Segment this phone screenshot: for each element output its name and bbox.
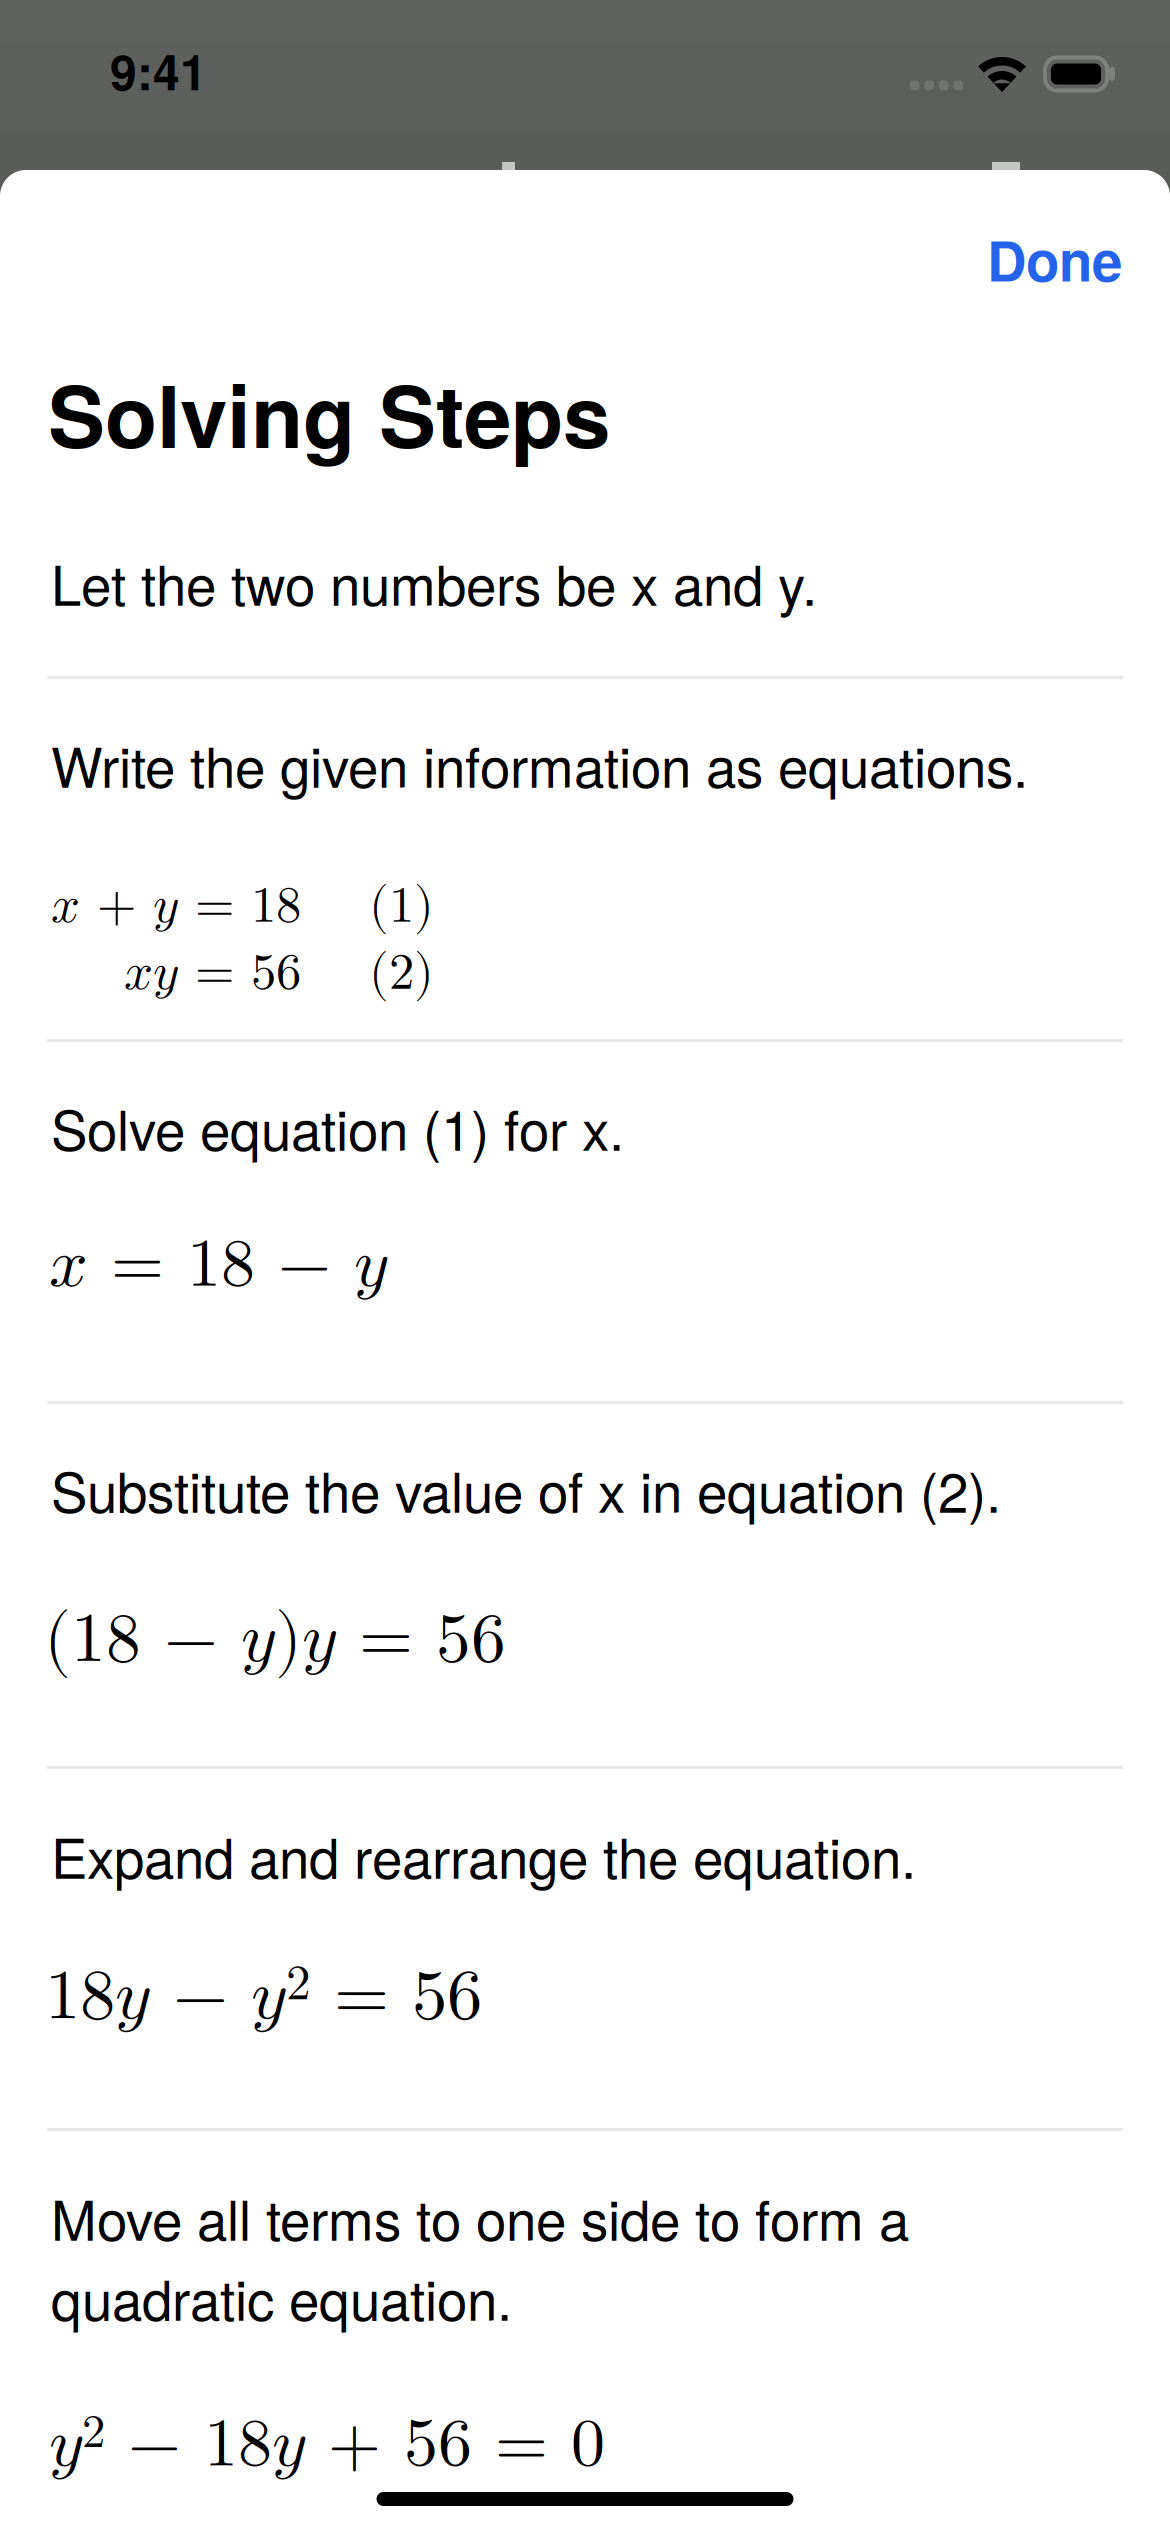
staticText: 18𝑦 − 𝑦2 = 56	[45, 1960, 482, 2031]
staticText: 𝑥 + 𝑦 = 18 (1)	[51, 881, 434, 932]
staticText: 𝑥𝑦 = 56 (2)	[124, 948, 434, 999]
staticText: Solving Steps	[48, 352, 610, 474]
button[interactable]: Done	[961, 220, 1170, 299]
staticText: quadratic equation.	[51, 2258, 512, 2336]
staticText: 𝑥 = 18 − 𝑦	[49, 1231, 387, 1299]
staticText: Move all terms to one side to form a	[51, 2178, 909, 2256]
staticText: Solve equation (1) for x.	[51, 1088, 624, 1166]
staticText: 9:41	[110, 36, 207, 105]
staticText: Done	[987, 220, 1122, 298]
staticText: Write the given information as equations…	[51, 725, 1028, 803]
staticText: Let the two numbers be x and y.	[51, 543, 817, 621]
staticText: Expand and rearrange the equation.	[51, 1816, 916, 1894]
staticText: 𝑦2 − 18𝑦 + 56 = 0	[49, 2410, 605, 2478]
staticText: Substitute the value of x in equation (2…	[51, 1450, 1001, 1528]
staticText: (18 − 𝑦)𝑦 = 56	[44, 1605, 506, 1674]
